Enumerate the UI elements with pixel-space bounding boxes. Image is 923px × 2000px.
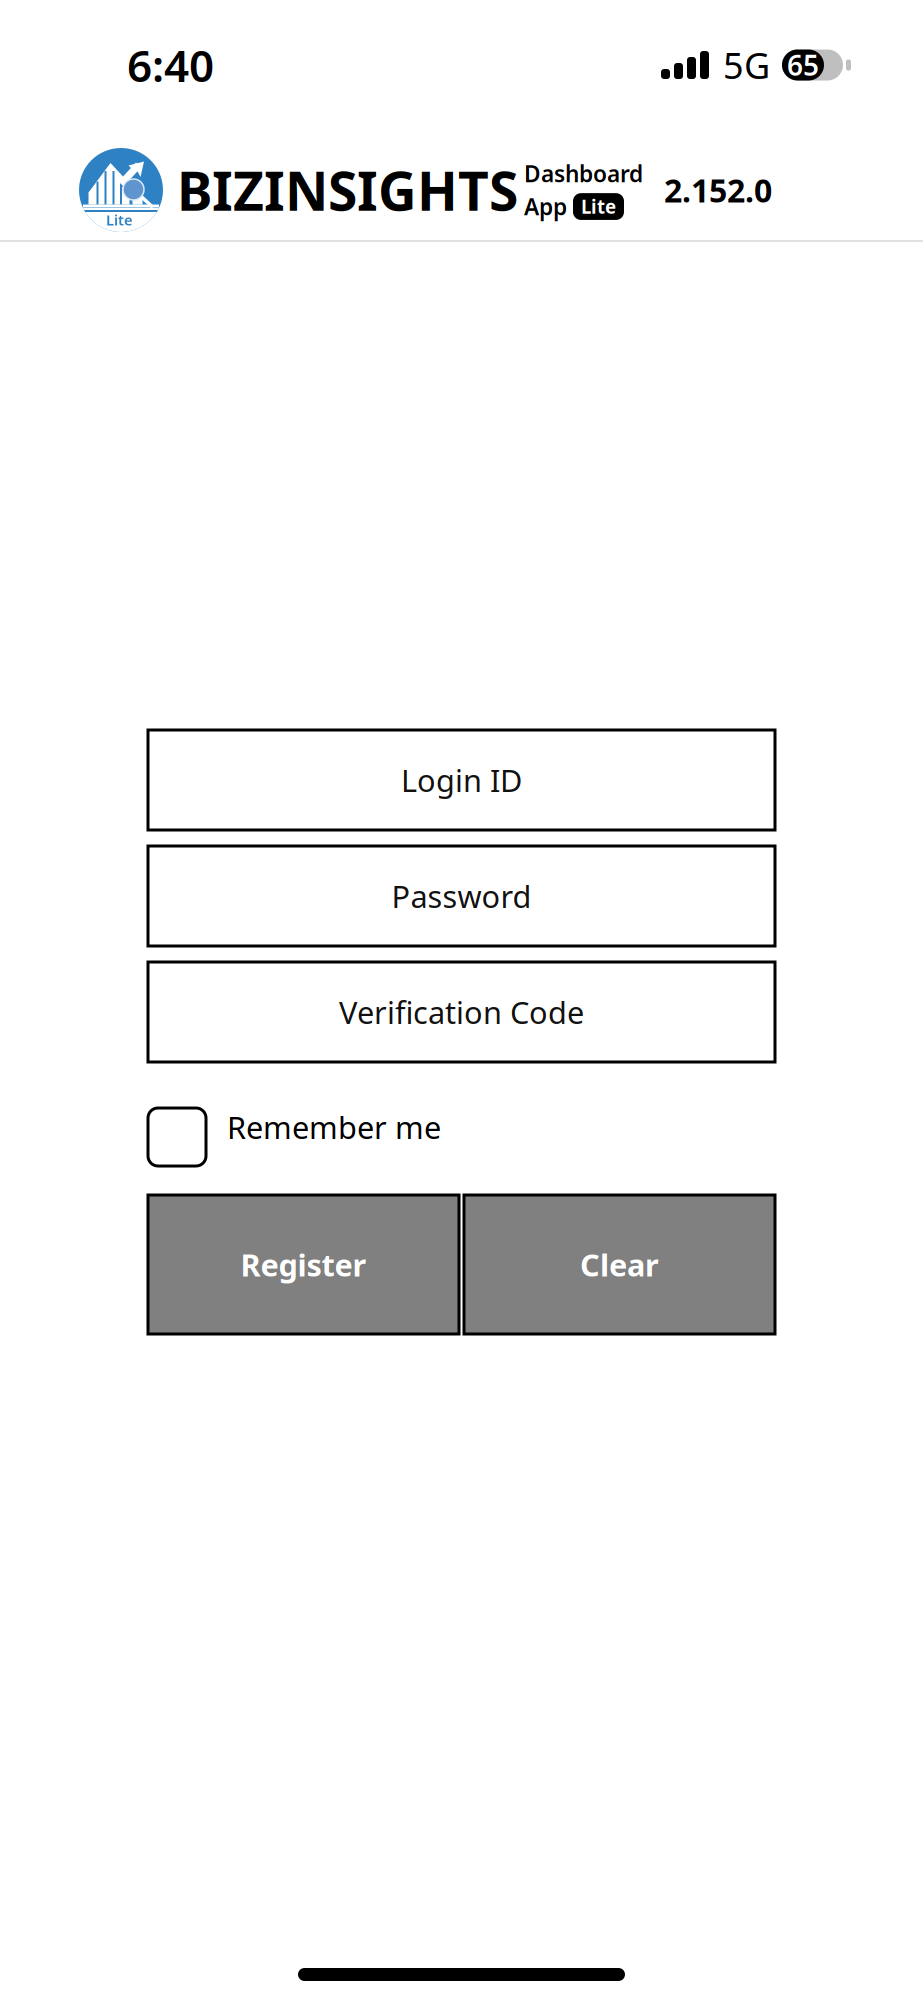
staticText: 5G: [723, 41, 770, 89]
button[interactable]: Clear: [464, 1195, 775, 1334]
staticText: Login ID: [401, 760, 522, 800]
staticText: 65: [787, 46, 819, 84]
button[interactable]: Register: [148, 1195, 459, 1334]
staticText: Lite: [581, 194, 616, 219]
staticText: BIZINSIGHTS: [177, 155, 518, 225]
staticText: Register: [240, 1244, 366, 1285]
staticText: 6:40: [127, 36, 214, 94]
staticText: 2.152.0: [664, 169, 772, 211]
staticText: Password: [391, 876, 531, 916]
button[interactable]: Login ID: [148, 730, 775, 830]
staticText: Remember me: [227, 1107, 441, 1147]
staticText: Lite: [106, 210, 133, 229]
staticText: App: [524, 191, 567, 222]
staticText: Clear: [580, 1244, 659, 1285]
staticText: Dashboard: [524, 158, 643, 188]
button[interactable]: Password: [148, 846, 775, 946]
button[interactable]: Remember me: [148, 1108, 442, 1166]
button[interactable]: Verification Code: [148, 962, 775, 1062]
staticText: Verification Code: [339, 992, 584, 1032]
